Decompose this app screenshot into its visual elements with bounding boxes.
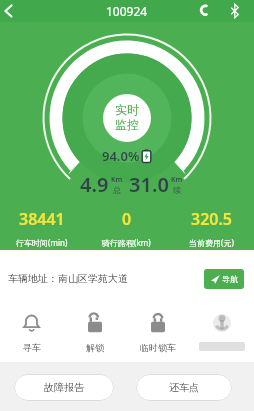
staticText: 实时 xyxy=(115,102,139,117)
staticText: 0 xyxy=(122,208,132,230)
staticText: 导航 xyxy=(222,274,238,284)
button[interactable]: 0 xyxy=(84,208,169,248)
staticText: 当前费用(元) xyxy=(189,237,234,248)
staticText: 解锁 xyxy=(86,342,104,353)
staticText: 监控 xyxy=(115,117,139,132)
button[interactable]: 320.5 xyxy=(169,208,254,248)
staticText: 故障报告 xyxy=(44,381,84,394)
staticText: 临时锁车 xyxy=(140,342,176,353)
staticText: 38441 xyxy=(19,208,65,230)
button[interactable] xyxy=(190,310,254,351)
staticText: 31.0 xyxy=(129,171,169,198)
button[interactable]: 导航 xyxy=(204,269,244,289)
staticText: 320.5 xyxy=(191,208,233,230)
staticText: 4.9 xyxy=(80,171,109,198)
staticText: Km xyxy=(111,175,123,185)
staticText: 总 xyxy=(113,185,121,195)
staticText: 94.0% xyxy=(102,147,140,165)
button[interactable] xyxy=(198,2,214,18)
staticText: 寻车 xyxy=(23,342,41,353)
button[interactable]: 临时锁车 xyxy=(126,310,190,353)
button[interactable]: 寻车 xyxy=(0,310,63,353)
staticText: 续 xyxy=(173,185,181,195)
button[interactable] xyxy=(228,3,242,19)
staticText: 100924 xyxy=(106,3,148,19)
button[interactable]: 还车点 xyxy=(136,374,232,401)
staticText: Km xyxy=(171,175,183,185)
button[interactable]: 38441 xyxy=(0,208,84,248)
staticText: 骑行路程(km) xyxy=(102,237,151,248)
staticText: 还车点 xyxy=(169,381,199,394)
button[interactable]: 故障报告 xyxy=(14,374,114,401)
button[interactable]: 实时 xyxy=(103,93,151,141)
staticText: 行车时间(min) xyxy=(16,237,68,248)
staticText: 车辆地址：南山区学苑大道 xyxy=(8,272,128,285)
button[interactable]: 解锁 xyxy=(63,310,126,353)
